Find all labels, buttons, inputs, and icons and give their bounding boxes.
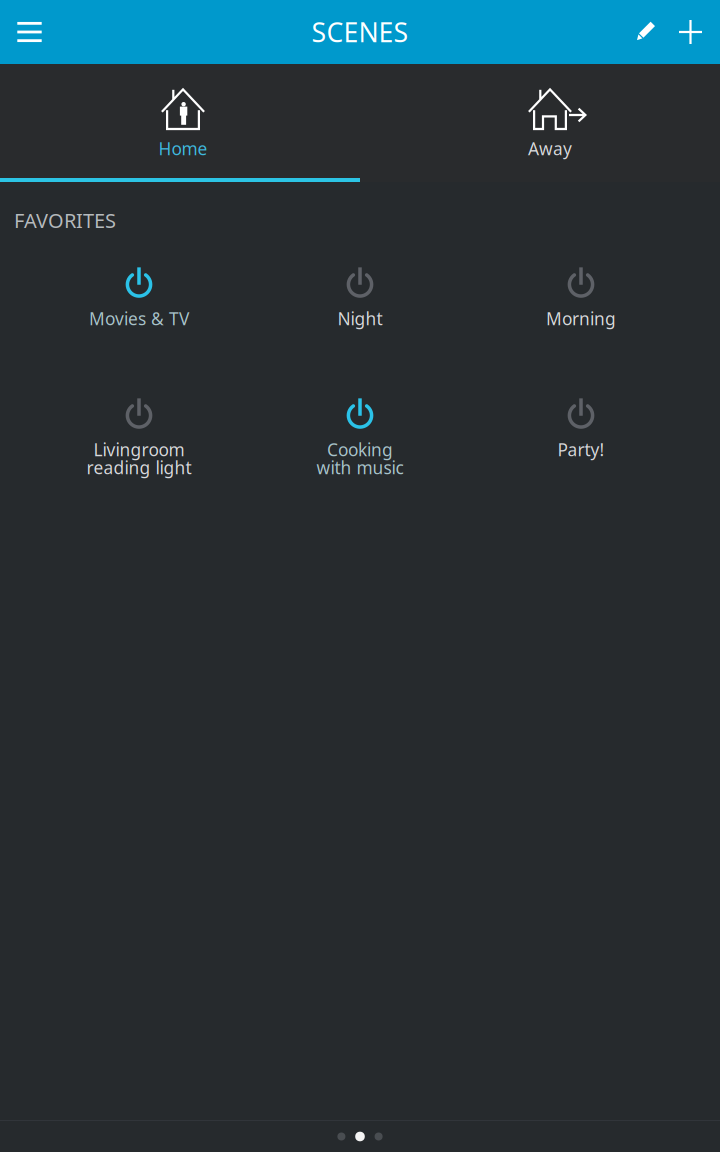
button[interactable]: Party! (470, 397, 691, 528)
staticText: Party! (557, 438, 604, 461)
staticText: SCENES (311, 14, 408, 50)
button[interactable]: Cooking (249, 397, 470, 528)
button[interactable]: Morning (470, 266, 691, 397)
button[interactable]: Night (249, 266, 470, 397)
button[interactable]: Add (661, 0, 720, 64)
staticText: with music (316, 456, 403, 479)
staticText: Cooking (327, 438, 393, 461)
button[interactable]: Movies & TV (28, 266, 249, 397)
staticText: reading light (86, 456, 191, 479)
button[interactable]: Home (0, 66, 360, 180)
staticText: Morning (546, 307, 616, 330)
staticText: FAVORITES (14, 207, 116, 234)
staticText: Livingroom (93, 438, 184, 461)
staticText: Away (528, 137, 572, 160)
button[interactable]: Edit (600, 0, 661, 64)
button[interactable]: Livingroom (28, 397, 249, 528)
button[interactable]: Away (360, 66, 720, 180)
staticText: Home (158, 137, 207, 160)
button[interactable]: Menu (0, 0, 59, 64)
staticText: Movies & TV (89, 307, 189, 330)
staticText: Night (337, 307, 382, 330)
